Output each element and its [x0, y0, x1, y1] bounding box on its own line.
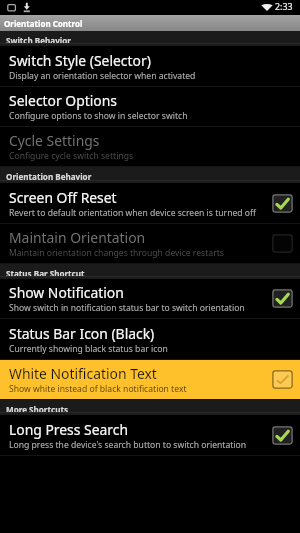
button[interactable]: Cycle Settings	[0, 127, 300, 166]
button[interactable]: Switch Style (Selector)	[0, 46, 300, 86]
staticText: Display an orientation selector when act…	[9, 70, 196, 82]
staticText: More Shortcuts	[6, 404, 69, 415]
staticText: Configure cycle switch settings	[9, 150, 134, 162]
staticText: Configure options to show in selector sw…	[9, 110, 188, 122]
staticText: Maintain orientation changes through dev…	[9, 247, 224, 259]
staticText: Revert to default orientation when devic…	[9, 207, 256, 219]
staticText: Switch Style (Selector)	[9, 51, 151, 70]
button[interactable]: Maintain Orientation	[0, 224, 300, 263]
staticText: Show Notification	[9, 283, 124, 302]
button[interactable]: Show Notification	[0, 279, 300, 318]
button[interactable]: Selector Options	[0, 87, 300, 126]
staticText: Long Press Search	[9, 420, 129, 439]
staticText: Orientation Behavior	[6, 171, 92, 182]
staticText: Show white instead of black notification…	[9, 383, 187, 395]
staticText: Orientation Control	[4, 18, 83, 29]
staticText: Long press the device's search button to…	[9, 439, 247, 451]
staticText: Currently showing black status bar icon	[9, 343, 168, 355]
staticText: Selector Options	[9, 91, 117, 110]
staticText: Maintain Orientation	[9, 228, 146, 247]
staticText: Status Bar Icon (Black)	[9, 324, 155, 343]
button[interactable]: Status Bar Icon (Black)	[0, 319, 300, 359]
button[interactable]: Long Press Search	[0, 415, 300, 455]
button[interactable]: Screen Off Reset	[0, 183, 300, 223]
staticText: White Notification Text	[9, 364, 157, 383]
button[interactable]: White Notification Text	[0, 360, 300, 399]
staticText: 2:33	[275, 1, 293, 13]
staticText: Show switch in notification status bar t…	[9, 302, 245, 314]
staticText: Screen Off Reset	[9, 188, 117, 207]
staticText: Status Bar Shortcut	[6, 268, 85, 279]
staticText: Switch Behavior	[6, 35, 71, 46]
staticText: Cycle Settings	[9, 131, 100, 150]
